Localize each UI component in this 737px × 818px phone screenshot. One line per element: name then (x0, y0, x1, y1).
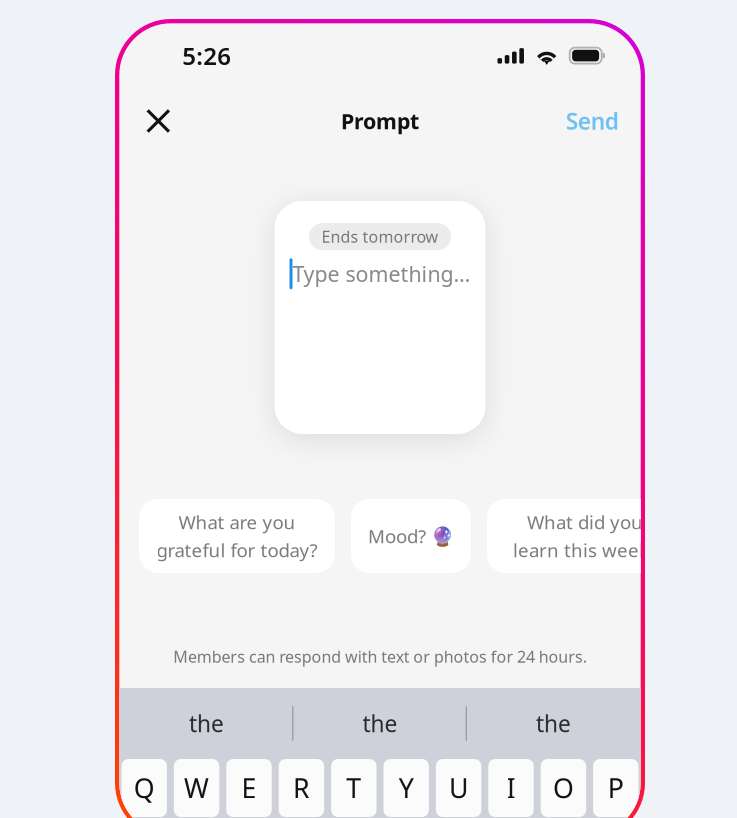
button[interactable]: What are you (139, 499, 335, 573)
button[interactable]: E (226, 759, 272, 817)
staticText: grateful for today? (156, 537, 317, 562)
staticText: learn this week? (513, 537, 657, 562)
button[interactable]: W (174, 759, 219, 817)
button[interactable]: P (593, 759, 638, 817)
button[interactable]: What did you (487, 499, 683, 573)
staticText: 5:26 (182, 40, 231, 72)
staticText: Mood? 🔮 (368, 524, 454, 548)
staticText: Type something… (292, 260, 470, 288)
button[interactable]: Close (135, 98, 181, 144)
staticText: Q (134, 770, 155, 806)
staticText: E (241, 770, 256, 806)
staticText: I (506, 770, 515, 806)
staticText: What are you (178, 510, 295, 534)
staticText: What did you (527, 510, 643, 534)
staticText: Ends tomorrow (321, 226, 438, 247)
staticText: T (346, 770, 361, 806)
button[interactable]: Y (383, 759, 429, 817)
button[interactable]: the (120, 688, 293, 759)
staticText: R (293, 770, 310, 806)
staticText: O (553, 770, 574, 806)
staticText: Members can respond with text or photos … (173, 646, 587, 667)
staticText: Prompt (341, 107, 419, 135)
button[interactable]: Q (121, 759, 167, 817)
button[interactable]: the (293, 688, 467, 759)
button[interactable]: Mood? 🔮 (351, 499, 471, 573)
staticText: the (189, 708, 224, 738)
button[interactable]: U (436, 759, 481, 817)
staticText: W (184, 770, 209, 806)
button[interactable]: the (467, 688, 640, 759)
staticText: Y (399, 770, 414, 806)
staticText: the (536, 708, 571, 738)
button[interactable]: O (541, 759, 586, 817)
button[interactable]: R (279, 759, 324, 817)
staticText: P (608, 770, 624, 806)
button[interactable]: Send (566, 98, 619, 144)
button[interactable]: I (488, 759, 534, 817)
staticText: Send (566, 106, 619, 136)
staticText: U (449, 770, 468, 806)
staticText: the (362, 708, 397, 738)
button[interactable]: T (331, 759, 376, 817)
